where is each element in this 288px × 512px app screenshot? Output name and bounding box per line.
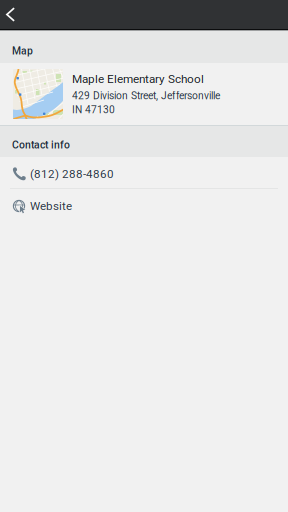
staticText: Map xyxy=(12,45,33,57)
staticText: (812) 288-4860 xyxy=(30,167,114,181)
button[interactable]: Open Website xyxy=(0,189,288,220)
button[interactable]: Back xyxy=(0,0,31,29)
staticText: IN 47130 xyxy=(72,104,115,116)
staticText: Contact info xyxy=(12,139,70,151)
button[interactable]: Maple Elementary School, 429 Division St… xyxy=(0,63,288,125)
staticText: Website xyxy=(30,199,72,213)
button[interactable]: Call (812) 288-4860 xyxy=(0,157,288,188)
staticText: Maple Elementary School xyxy=(72,72,204,86)
staticText: 429 Division Street, Jeffersonville xyxy=(72,90,220,102)
